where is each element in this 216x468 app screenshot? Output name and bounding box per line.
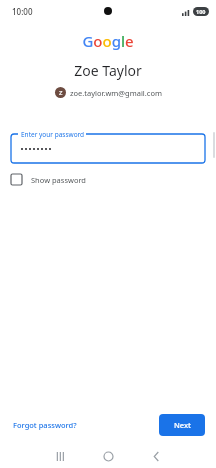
button[interactable]: Back <box>146 446 166 466</box>
staticText: 100 <box>196 8 206 15</box>
staticText: Zoe Taylor <box>0 61 216 80</box>
button[interactable]: Recent apps <box>50 446 70 466</box>
staticText: Z <box>59 89 63 97</box>
staticText: Show password <box>31 175 86 185</box>
button[interactable]: Forgot password? <box>11 417 79 433</box>
staticText: Next <box>174 420 191 430</box>
button[interactable]: Home <box>98 446 118 466</box>
staticText: 10:00 <box>12 6 33 17</box>
button[interactable]: Z <box>54 86 163 99</box>
staticText: Enter your password <box>21 130 85 139</box>
staticText: Google <box>0 31 216 51</box>
staticText: zoe.taylor.wm@gmail.com <box>70 88 162 98</box>
staticText: Forgot password? <box>13 420 77 430</box>
button[interactable]: Next <box>159 414 205 436</box>
button[interactable]: Show password <box>11 171 205 188</box>
